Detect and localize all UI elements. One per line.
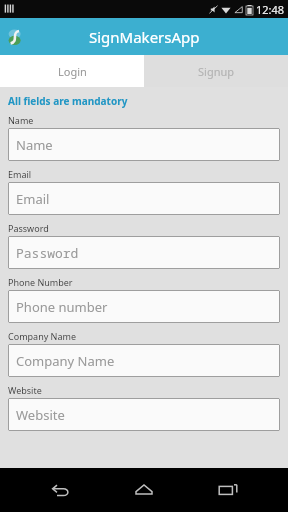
staticText: Website <box>8 384 42 396</box>
staticText: Website <box>16 406 65 424</box>
button[interactable]: Login <box>0 55 144 87</box>
button[interactable]: Home <box>121 468 167 512</box>
staticText: Signup <box>198 64 235 79</box>
button[interactable]: App logo <box>5 27 25 47</box>
button[interactable]: Signup <box>144 55 288 87</box>
staticText: Name <box>16 136 53 154</box>
staticText: Company Name <box>8 330 77 342</box>
staticText: Login <box>58 64 87 79</box>
button[interactable]: Name <box>8 128 280 161</box>
button[interactable]: Phone number <box>8 290 280 323</box>
staticText: SignMakersApp <box>89 27 200 47</box>
button[interactable]: Back <box>38 468 84 512</box>
staticText: Email <box>16 190 50 208</box>
button[interactable]: Recent apps <box>205 468 251 512</box>
staticText: 12:48 <box>256 2 285 17</box>
staticText: Name <box>8 114 34 126</box>
button[interactable]: Website <box>8 398 280 431</box>
staticText: Company Name <box>16 352 115 370</box>
button[interactable]: Company Name <box>8 344 280 377</box>
button[interactable]: Email <box>8 182 280 215</box>
staticText: Phone number <box>16 298 108 316</box>
staticText: Password <box>16 244 79 262</box>
button[interactable]: Password <box>8 236 280 269</box>
staticText: All fields are mandatory <box>8 94 128 108</box>
staticText: Password <box>8 222 49 234</box>
staticText: Phone Number <box>8 276 73 288</box>
staticText: Email <box>8 168 32 180</box>
